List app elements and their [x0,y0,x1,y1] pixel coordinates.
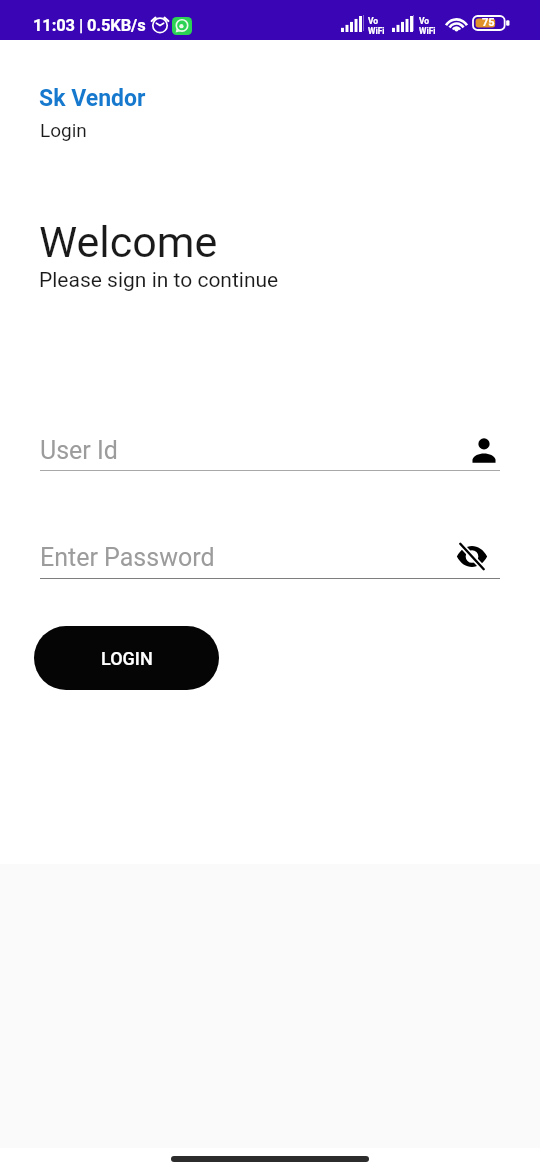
staticText: LOGIN [101,648,153,669]
staticText: Login [40,119,87,141]
staticText: Sk Vendor [39,85,146,112]
staticText: Please sign in to continue [39,268,279,293]
staticText: WiFi [368,26,385,36]
button[interactable]: LOGIN [34,626,219,690]
staticText: 75 [482,16,495,29]
button[interactable]: Toggle password visibility [452,536,492,576]
staticText: Vo [419,16,430,26]
staticText: 11:03 | 0.5KB/s [33,16,146,35]
staticText: Welcome [39,217,218,267]
staticText: Vo [368,16,379,26]
staticText: User Id [40,436,118,465]
staticText: WiFi [419,26,436,36]
button[interactable]: User [464,430,504,470]
staticText: Enter Password [40,543,215,572]
